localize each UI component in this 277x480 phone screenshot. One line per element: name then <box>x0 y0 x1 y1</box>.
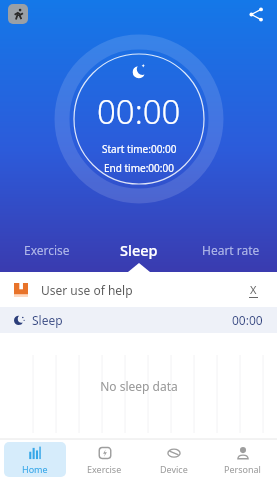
staticText: Device <box>160 463 188 475</box>
button[interactable]: Share <box>243 1 269 27</box>
button[interactable]: Exercise <box>0 228 93 272</box>
staticText: Start time:00:00 <box>102 142 177 156</box>
staticText: 00:00 <box>97 89 181 134</box>
button[interactable]: User use of help <box>0 272 277 307</box>
button[interactable]: Close <box>243 280 263 300</box>
button[interactable]: Exercise <box>74 442 135 477</box>
staticText: Personal <box>224 463 261 475</box>
staticText: 00:00 <box>232 312 263 328</box>
button[interactable]: Sleep <box>0 307 277 333</box>
button[interactable]: Home <box>4 442 66 477</box>
button[interactable]: Heart rate <box>185 228 277 272</box>
staticText: X <box>250 282 257 297</box>
button[interactable]: App icon <box>8 4 28 24</box>
staticText: No sleep data <box>100 378 178 394</box>
staticText: Exercise <box>24 242 70 258</box>
staticText: User use of help <box>41 282 133 298</box>
staticText: Heart rate <box>202 242 260 258</box>
staticText: End time:00:00 <box>104 161 174 175</box>
staticText: Home <box>22 463 48 475</box>
button[interactable]: Device <box>143 442 204 477</box>
staticText: Sleep <box>120 240 158 260</box>
button[interactable]: Personal <box>212 442 273 477</box>
button[interactable]: Sleep <box>93 228 185 272</box>
staticText: Exercise <box>87 463 122 475</box>
staticText: Sleep <box>32 312 63 328</box>
